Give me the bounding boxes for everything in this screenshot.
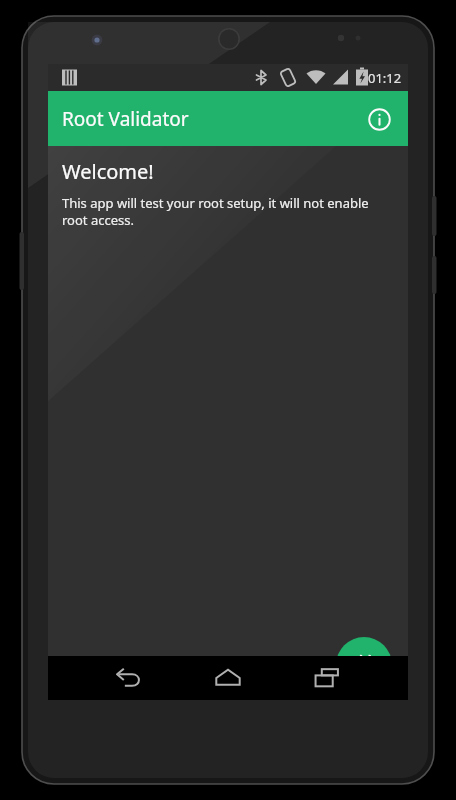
button[interactable]: Back bbox=[105, 656, 153, 700]
staticText: Root Validator bbox=[62, 106, 189, 132]
staticText: Welcome! bbox=[62, 158, 154, 185]
button[interactable]: Home bbox=[204, 656, 252, 700]
staticText: 01:12 bbox=[368, 69, 402, 87]
staticText: This app will test your root setup, it w… bbox=[62, 194, 384, 236]
button[interactable]: About bbox=[360, 100, 398, 138]
button[interactable]: Run root test bbox=[336, 637, 392, 693]
button[interactable]: Recent apps bbox=[303, 656, 351, 700]
